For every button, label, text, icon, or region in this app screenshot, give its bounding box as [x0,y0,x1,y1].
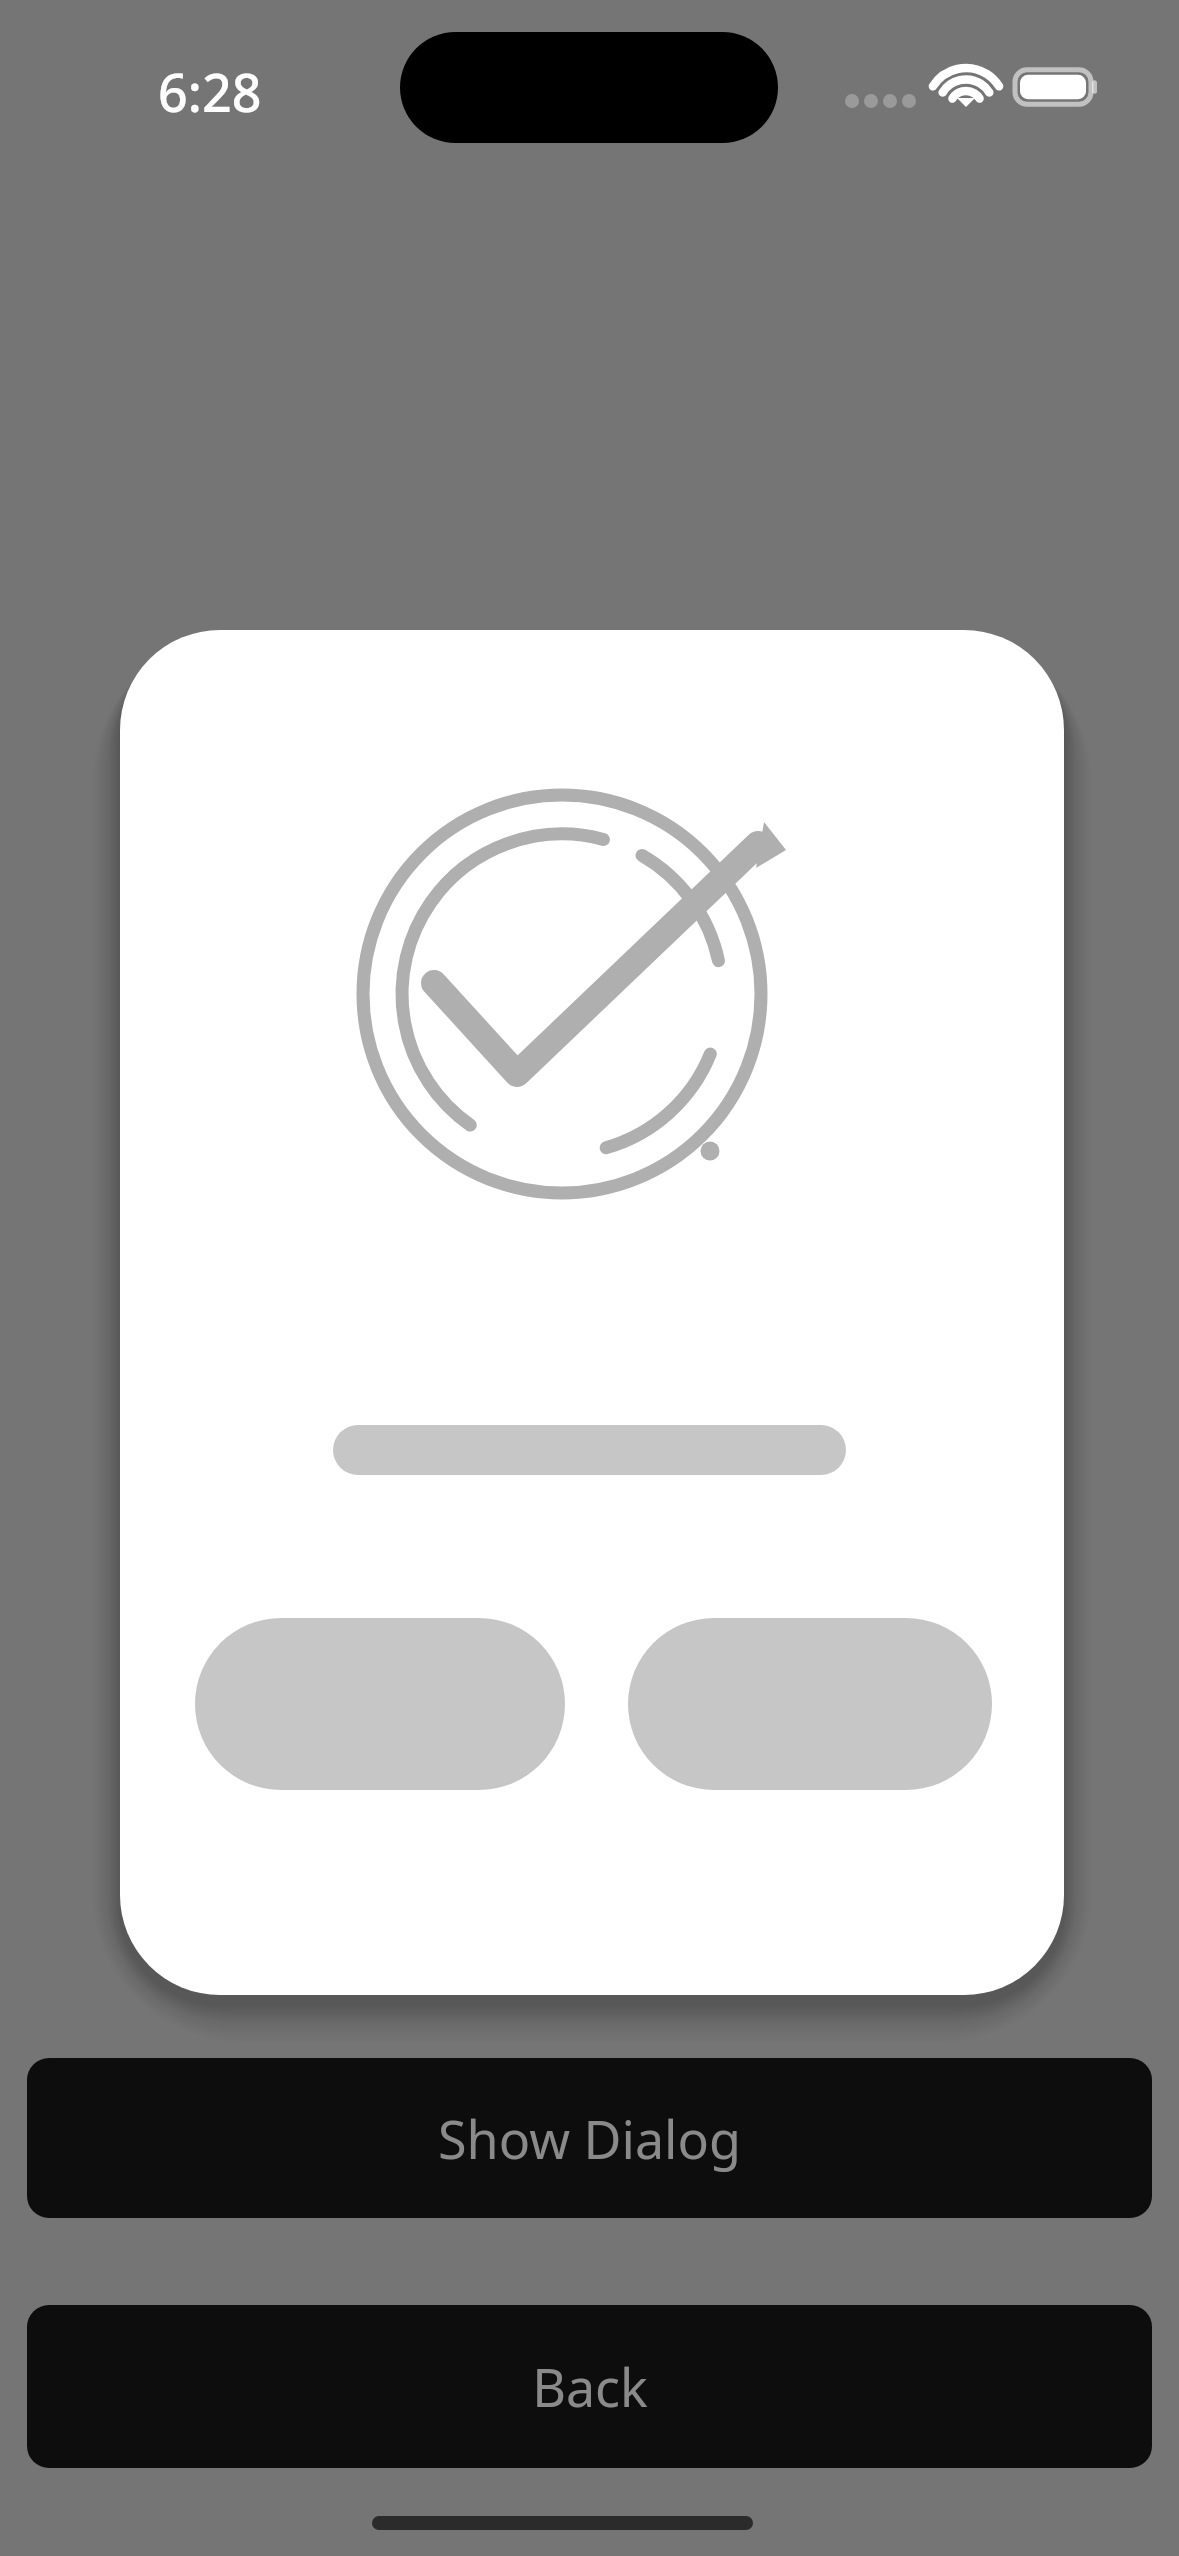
button[interactable]: Back [27,2305,1152,2468]
button[interactable] [195,1618,565,1790]
button[interactable]: Show Dialog [27,2058,1152,2218]
staticText: Show Dialog [438,2103,741,2174]
button[interactable] [628,1618,992,1790]
staticText: Back [532,2351,648,2422]
staticText: 6:28 [158,56,262,116]
